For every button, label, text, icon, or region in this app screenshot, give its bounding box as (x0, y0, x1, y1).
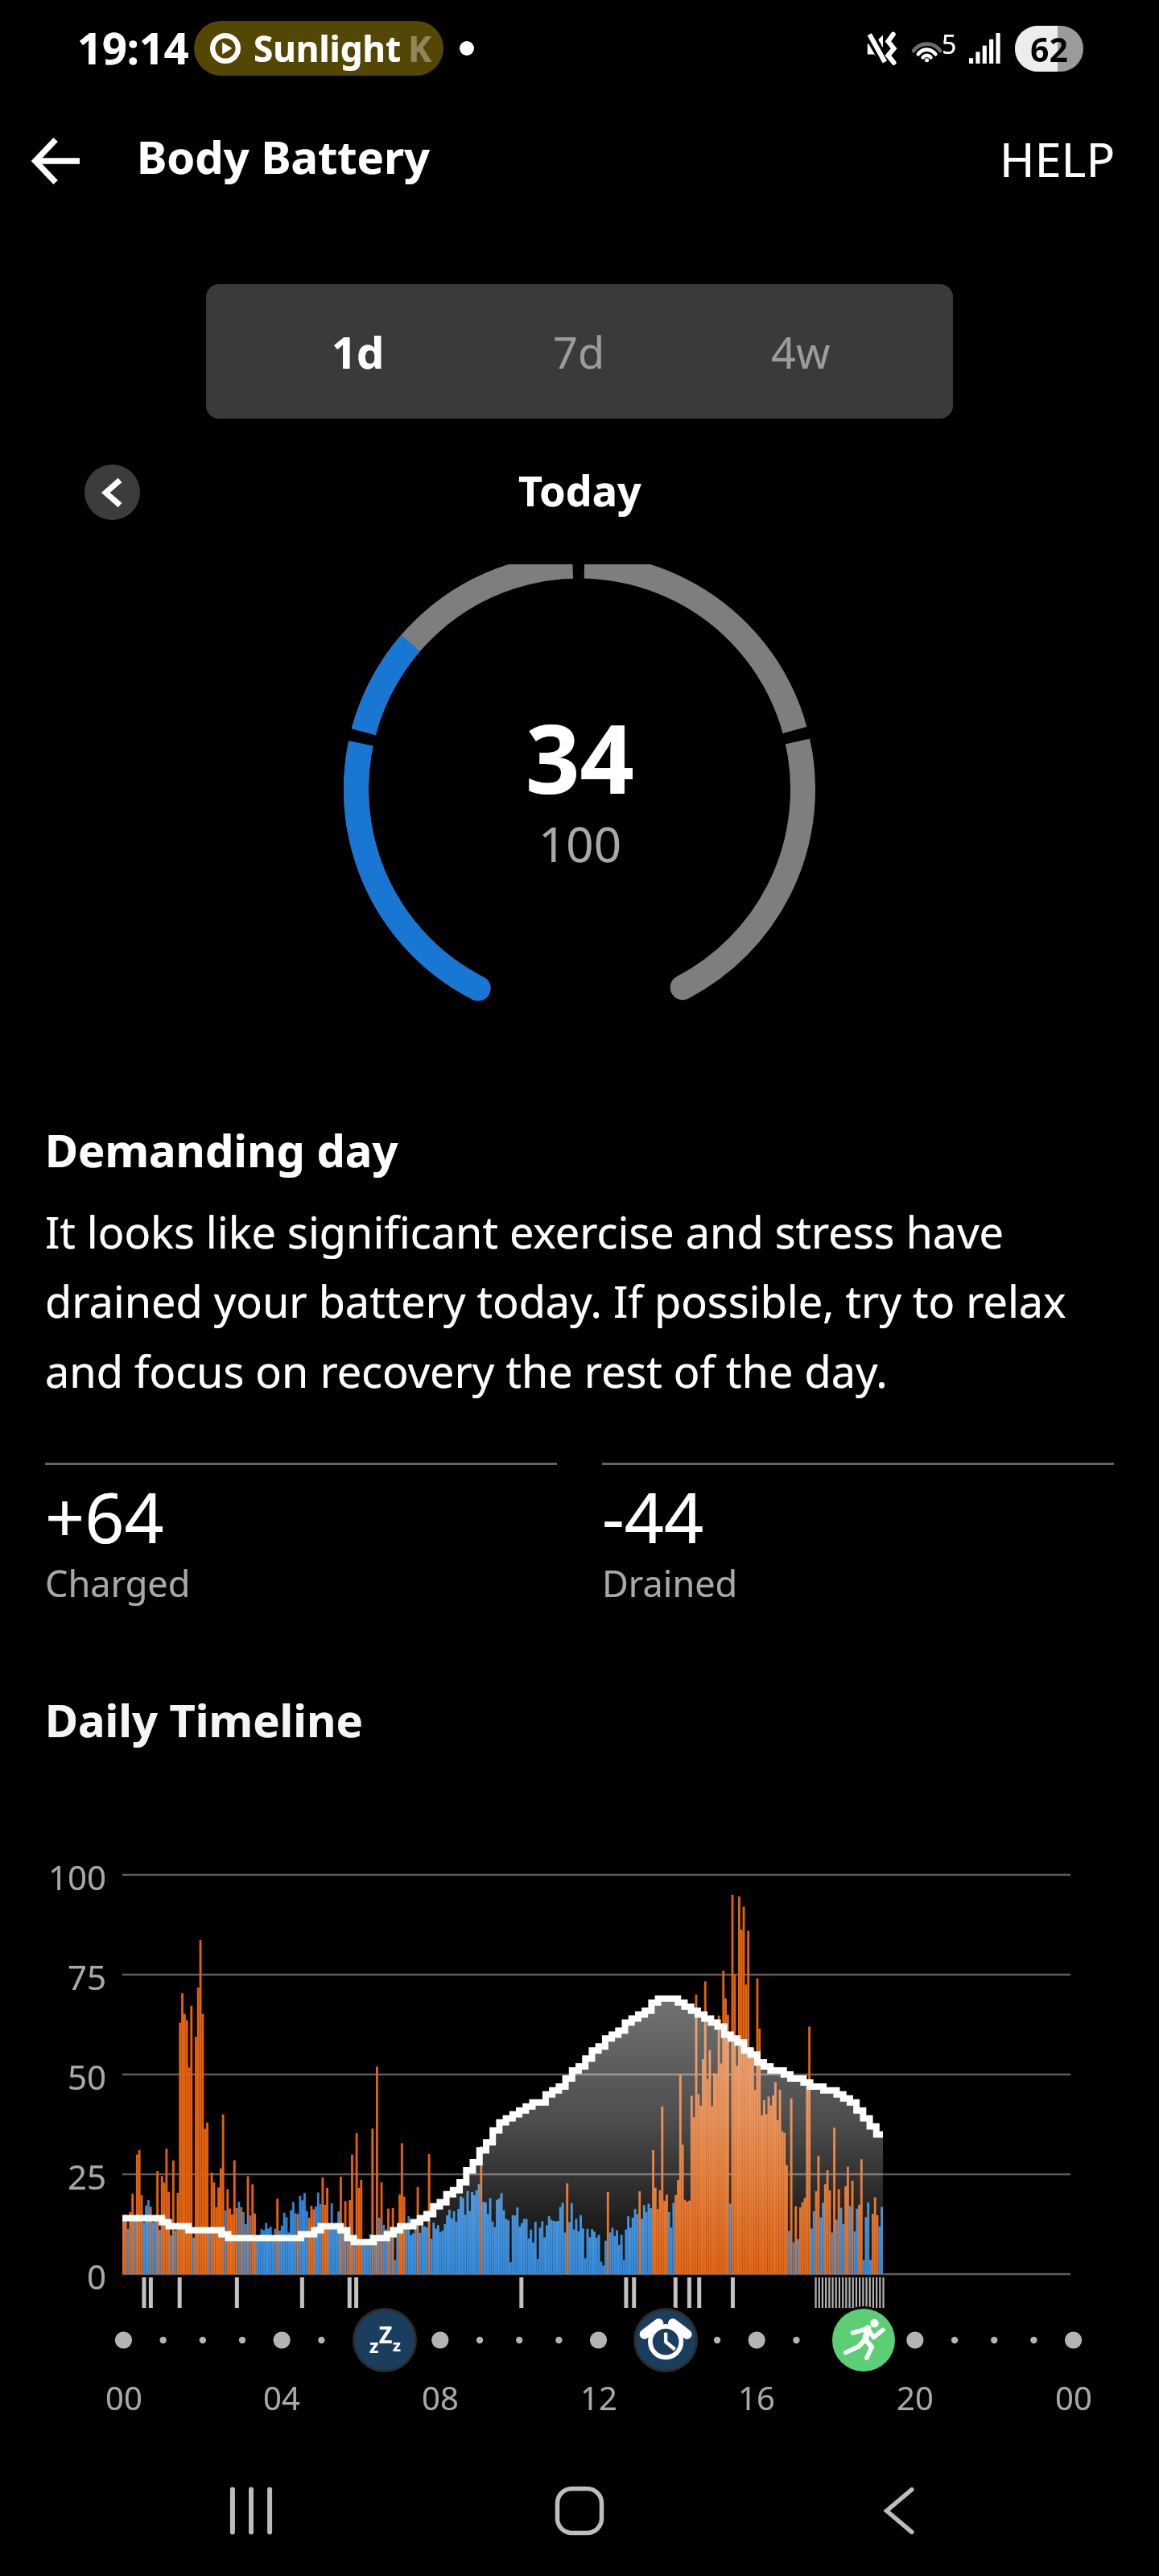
staticText: 00 (1017, 2376, 1130, 2419)
button[interactable]: Recent apps (203, 2462, 299, 2559)
button[interactable]: +64 (45, 1463, 557, 1612)
button[interactable]: Back (850, 2462, 947, 2559)
button[interactable]: 7d (468, 284, 690, 419)
staticText: Sunlight (254, 24, 402, 72)
staticText: 5 (942, 27, 957, 62)
staticText: It looks like significant exercise and s… (45, 1202, 1124, 1401)
staticText: 7d (553, 322, 605, 382)
button[interactable]: 4w (690, 284, 911, 419)
staticText: z (393, 2334, 401, 2356)
staticText: Body Battery (137, 126, 430, 187)
button[interactable]: Sunlight (194, 21, 443, 76)
staticText: 100 (538, 811, 621, 877)
staticText: 50 (24, 2054, 106, 2099)
staticText: 12 (542, 2376, 655, 2419)
staticText: Drained (602, 1558, 738, 1608)
staticText: 100 (24, 1854, 106, 1900)
button[interactable]: HELP (980, 112, 1135, 205)
staticText: 20 (859, 2376, 971, 2419)
staticText: 0 (24, 2253, 106, 2299)
staticText: 75 (24, 1954, 106, 2000)
staticText: 19:14 (77, 18, 189, 77)
button[interactable]: Home (531, 2462, 628, 2559)
button[interactable]: -44 (602, 1463, 1114, 1612)
staticText: K (408, 24, 432, 72)
staticText: Demanding day (45, 1119, 398, 1180)
staticText: Charged (45, 1558, 191, 1608)
staticText: z (369, 2333, 379, 2358)
staticText: 25 (24, 2153, 106, 2199)
staticText: 4w (771, 322, 831, 382)
staticText: 04 (225, 2376, 338, 2419)
staticText: Today (518, 461, 641, 518)
staticText: -44 (602, 1469, 704, 1563)
staticText: Z (379, 2319, 393, 2350)
staticText: 1d (332, 322, 385, 382)
staticText: 34 (526, 692, 634, 822)
button[interactable]: Previous day (85, 464, 140, 520)
staticText: 62 (1030, 27, 1068, 72)
staticText: +64 (45, 1469, 164, 1563)
button[interactable]: Navigate up (21, 126, 92, 196)
staticText: Daily Timeline (45, 1689, 363, 1750)
staticText: 08 (384, 2376, 497, 2419)
staticText: HELP (1000, 126, 1116, 191)
staticText: 16 (700, 2376, 813, 2419)
staticText: 00 (68, 2376, 180, 2419)
button[interactable]: 1d (248, 284, 468, 419)
